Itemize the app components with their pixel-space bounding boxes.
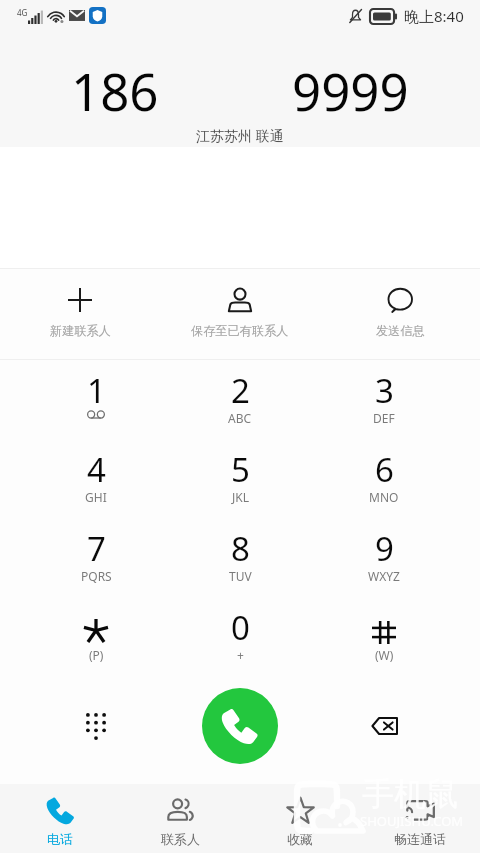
staticText: 186 — [71, 56, 159, 125]
button[interactable]: (W) — [312, 597, 456, 676]
staticText: 收藏 — [287, 831, 313, 847]
staticText: 0 — [231, 605, 250, 650]
button[interactable]: 9 — [312, 518, 456, 597]
button[interactable]: 0 — [168, 597, 312, 676]
button[interactable]: 7 — [24, 518, 168, 597]
staticText: 7 — [87, 526, 106, 571]
button[interactable]: 联系人 — [120, 784, 240, 853]
staticText: GHI — [85, 489, 107, 505]
button[interactable]: 新建联系人 — [0, 269, 160, 359]
staticText: 4G — [17, 7, 28, 18]
button[interactable]: 畅连通话 — [360, 784, 480, 853]
staticText: 电话 — [47, 831, 73, 847]
staticText: DEF — [373, 410, 395, 426]
button[interactable]: 4 — [24, 439, 168, 518]
staticText: 3 — [375, 368, 394, 413]
staticText: 9 — [375, 526, 394, 571]
staticText: 9999 — [292, 56, 409, 125]
button[interactable]: Show keypad options — [24, 672, 168, 780]
button[interactable]: 保存至已有联系人 — [160, 269, 320, 359]
staticText: 6 — [375, 447, 394, 492]
staticText: 江苏苏州 联通 — [196, 126, 284, 145]
staticText: 5 — [231, 447, 250, 492]
button[interactable]: 6 — [312, 439, 456, 518]
button[interactable]: 8 — [168, 518, 312, 597]
button[interactable]: Delete — [312, 672, 456, 780]
button[interactable]: 1 — [24, 360, 168, 439]
staticText: + — [237, 647, 244, 663]
staticText: (W) — [375, 647, 394, 663]
staticText: PQRS — [81, 568, 112, 584]
staticText: 1 — [87, 368, 106, 413]
button[interactable]: (P) — [24, 597, 168, 676]
staticText: 2 — [231, 368, 250, 413]
staticText: SHOUJISHU.COM — [360, 812, 464, 830]
staticText: 保存至已有联系人 — [191, 323, 289, 338]
button[interactable]: 电话 — [0, 784, 120, 853]
staticText: TUV — [229, 568, 252, 584]
staticText: (P) — [89, 647, 104, 663]
staticText: MNO — [369, 489, 399, 505]
staticText: 4 — [87, 447, 106, 492]
staticText: 手机鼠 — [362, 774, 458, 814]
staticText: 新建联系人 — [50, 323, 111, 338]
staticText: 8 — [231, 526, 250, 571]
button[interactable]: 2 — [168, 360, 312, 439]
staticText: 联系人 — [161, 831, 200, 847]
staticText: 畅连通话 — [394, 831, 446, 847]
button[interactable]: 5 — [168, 439, 312, 518]
button[interactable]: Call — [202, 688, 278, 764]
staticText: 晚上8:40 — [404, 6, 464, 26]
button[interactable]: 发送信息 — [320, 269, 480, 359]
staticText: WXYZ — [368, 568, 400, 584]
staticText: 发送信息 — [376, 323, 425, 338]
button[interactable]: 收藏 — [240, 784, 360, 853]
staticText: ABC — [228, 410, 252, 426]
button[interactable]: 3 — [312, 360, 456, 439]
staticText: JKL — [232, 489, 249, 505]
